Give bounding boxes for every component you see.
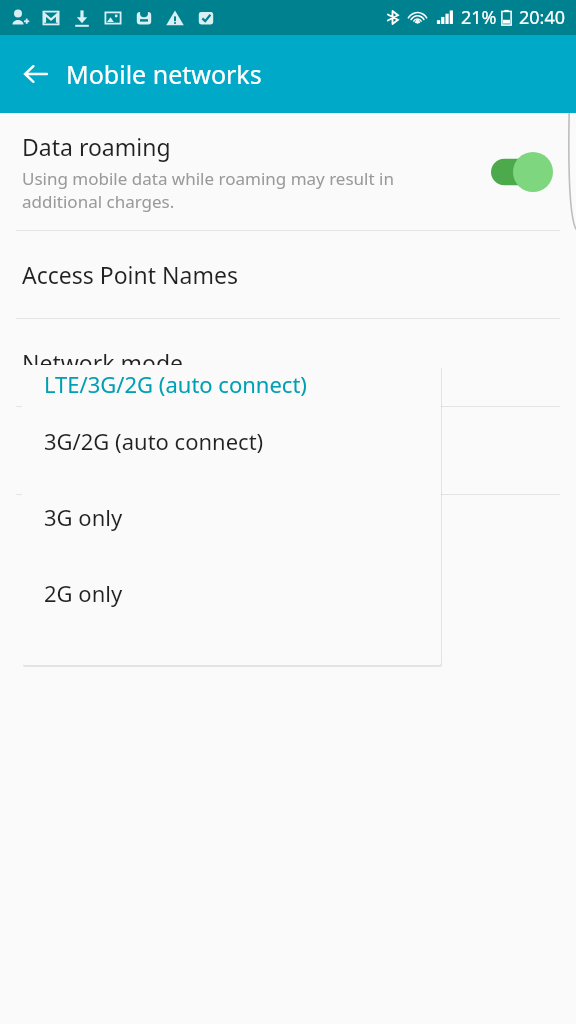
staticText: Using mobile data while roaming may resu… — [22, 167, 466, 213]
staticText: LTE/3G/2G (auto connect) — [44, 369, 307, 399]
staticText: 3G/2G (auto connect) — [44, 426, 264, 456]
button[interactable]: 3G/2G (auto connect) — [22, 403, 441, 479]
staticText: Access Point Names — [22, 259, 238, 290]
button[interactable]: 2G only — [22, 555, 441, 631]
staticText: 20:40 — [519, 5, 566, 30]
staticText: Network mode — [22, 347, 184, 378]
staticText: Mobile networks — [66, 57, 262, 91]
button[interactable]: Data roaming toggle — [486, 145, 558, 199]
button[interactable]: LTE/3G/2G (auto connect) — [22, 365, 441, 403]
staticText: Data roaming — [22, 131, 171, 162]
button[interactable]: Back — [10, 48, 62, 100]
staticText: 2G only — [44, 578, 123, 608]
button[interactable]: Network mode — [0, 319, 576, 406]
button[interactable]: 3G only — [22, 479, 441, 555]
button[interactable]: Access Point Names — [0, 231, 576, 318]
staticText: 3G only — [44, 502, 123, 532]
staticText: 21% — [461, 5, 497, 30]
button[interactable]: Data roaming — [0, 113, 576, 230]
button[interactable] — [0, 407, 576, 494]
